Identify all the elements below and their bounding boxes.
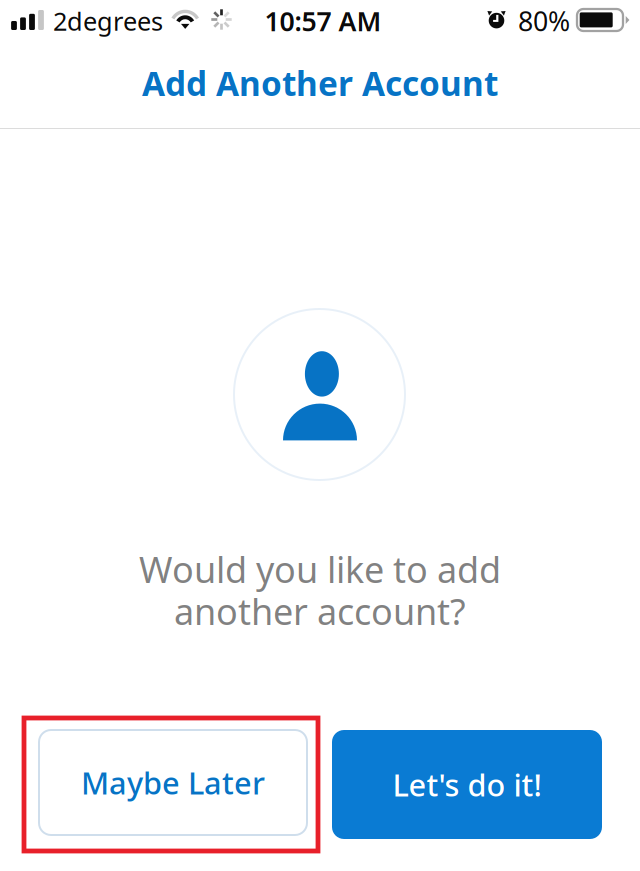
- button[interactable]: Maybe Later: [39, 730, 307, 835]
- button[interactable]: Let's do it!: [332, 730, 602, 839]
- staticText: 80%: [518, 3, 570, 39]
- staticText: Let's do it!: [392, 764, 541, 805]
- staticText: 10:57 AM: [264, 3, 381, 39]
- staticText: 2degrees: [53, 4, 163, 38]
- staticText: Maybe Later: [81, 762, 265, 803]
- staticText: Would you like to add: [139, 545, 501, 593]
- staticText: another account?: [174, 587, 466, 635]
- staticText: Add Another Account: [142, 61, 498, 105]
